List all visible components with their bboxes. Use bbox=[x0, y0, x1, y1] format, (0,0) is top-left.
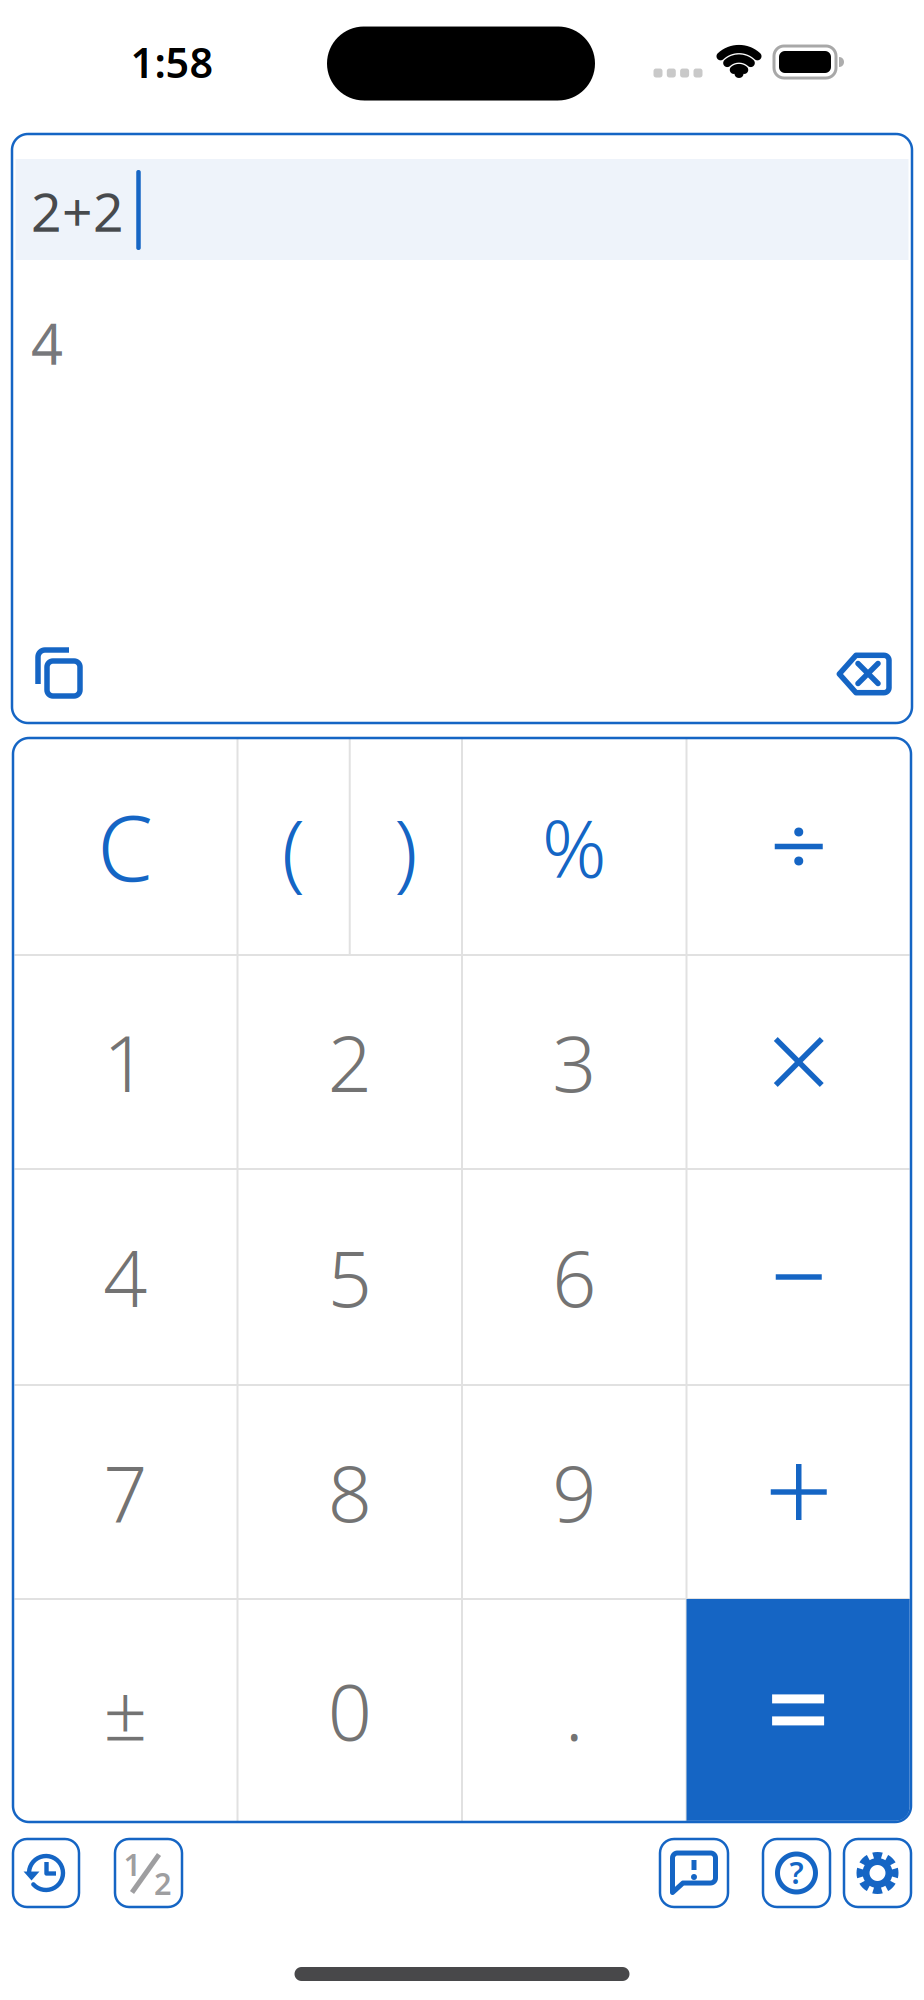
button[interactable]: 1 bbox=[15, 956, 235, 1168]
button[interactable]: 4 bbox=[15, 1171, 235, 1383]
button[interactable] bbox=[35, 647, 83, 699]
button[interactable]: 8 bbox=[240, 1386, 460, 1598]
button[interactable]: C bbox=[15, 740, 235, 952]
button[interactable]: 2 bbox=[240, 956, 460, 1168]
button[interactable] bbox=[686, 1599, 910, 1821]
staticText: 7 bbox=[103, 1441, 147, 1543]
button[interactable] bbox=[660, 1839, 728, 1907]
staticText: 2 bbox=[328, 1011, 372, 1113]
button[interactable]: 5 bbox=[240, 1171, 460, 1383]
button[interactable] bbox=[687, 1384, 911, 1600]
staticText: 9 bbox=[552, 1441, 596, 1543]
button[interactable]: 1 bbox=[115, 1839, 182, 1907]
staticText: 8 bbox=[328, 1441, 372, 1543]
button[interactable]: 9 bbox=[464, 1386, 684, 1598]
button[interactable] bbox=[836, 652, 890, 694]
staticText: 2+2 bbox=[31, 176, 124, 246]
staticText: 3 bbox=[552, 1011, 596, 1113]
staticText: ) bbox=[394, 792, 418, 906]
button[interactable]: 6 bbox=[464, 1171, 684, 1383]
button[interactable]: ( bbox=[240, 743, 348, 955]
staticText: 6 bbox=[552, 1226, 596, 1328]
button[interactable]: . bbox=[464, 1604, 684, 1816]
staticText: 1 bbox=[123, 1844, 141, 1884]
staticText: ± bbox=[103, 1659, 147, 1762]
staticText: . bbox=[565, 1659, 584, 1762]
button[interactable] bbox=[687, 1169, 911, 1385]
staticText: C bbox=[97, 787, 153, 906]
button[interactable]: ± bbox=[15, 1604, 235, 1816]
staticText: ? bbox=[789, 1852, 803, 1892]
button[interactable]: ) bbox=[352, 743, 460, 955]
button[interactable] bbox=[687, 954, 911, 1170]
button[interactable]: 7 bbox=[15, 1386, 235, 1598]
button[interactable] bbox=[13, 1839, 79, 1907]
button[interactable] bbox=[844, 1839, 911, 1907]
button[interactable]: ? bbox=[763, 1839, 830, 1907]
button[interactable]: % bbox=[464, 740, 684, 952]
button[interactable]: 3 bbox=[464, 956, 684, 1168]
button[interactable] bbox=[687, 738, 911, 954]
button[interactable]: 0 bbox=[240, 1604, 460, 1816]
staticText: ( bbox=[282, 792, 306, 906]
staticText: 0 bbox=[328, 1659, 372, 1762]
staticText: 4 bbox=[31, 306, 63, 380]
staticText: 1 bbox=[103, 1011, 147, 1113]
staticText: 5 bbox=[328, 1226, 372, 1328]
staticText: 2 bbox=[154, 1863, 172, 1903]
staticText: 1:58 bbox=[130, 35, 213, 89]
staticText: % bbox=[542, 793, 607, 900]
staticText: 4 bbox=[103, 1226, 147, 1328]
